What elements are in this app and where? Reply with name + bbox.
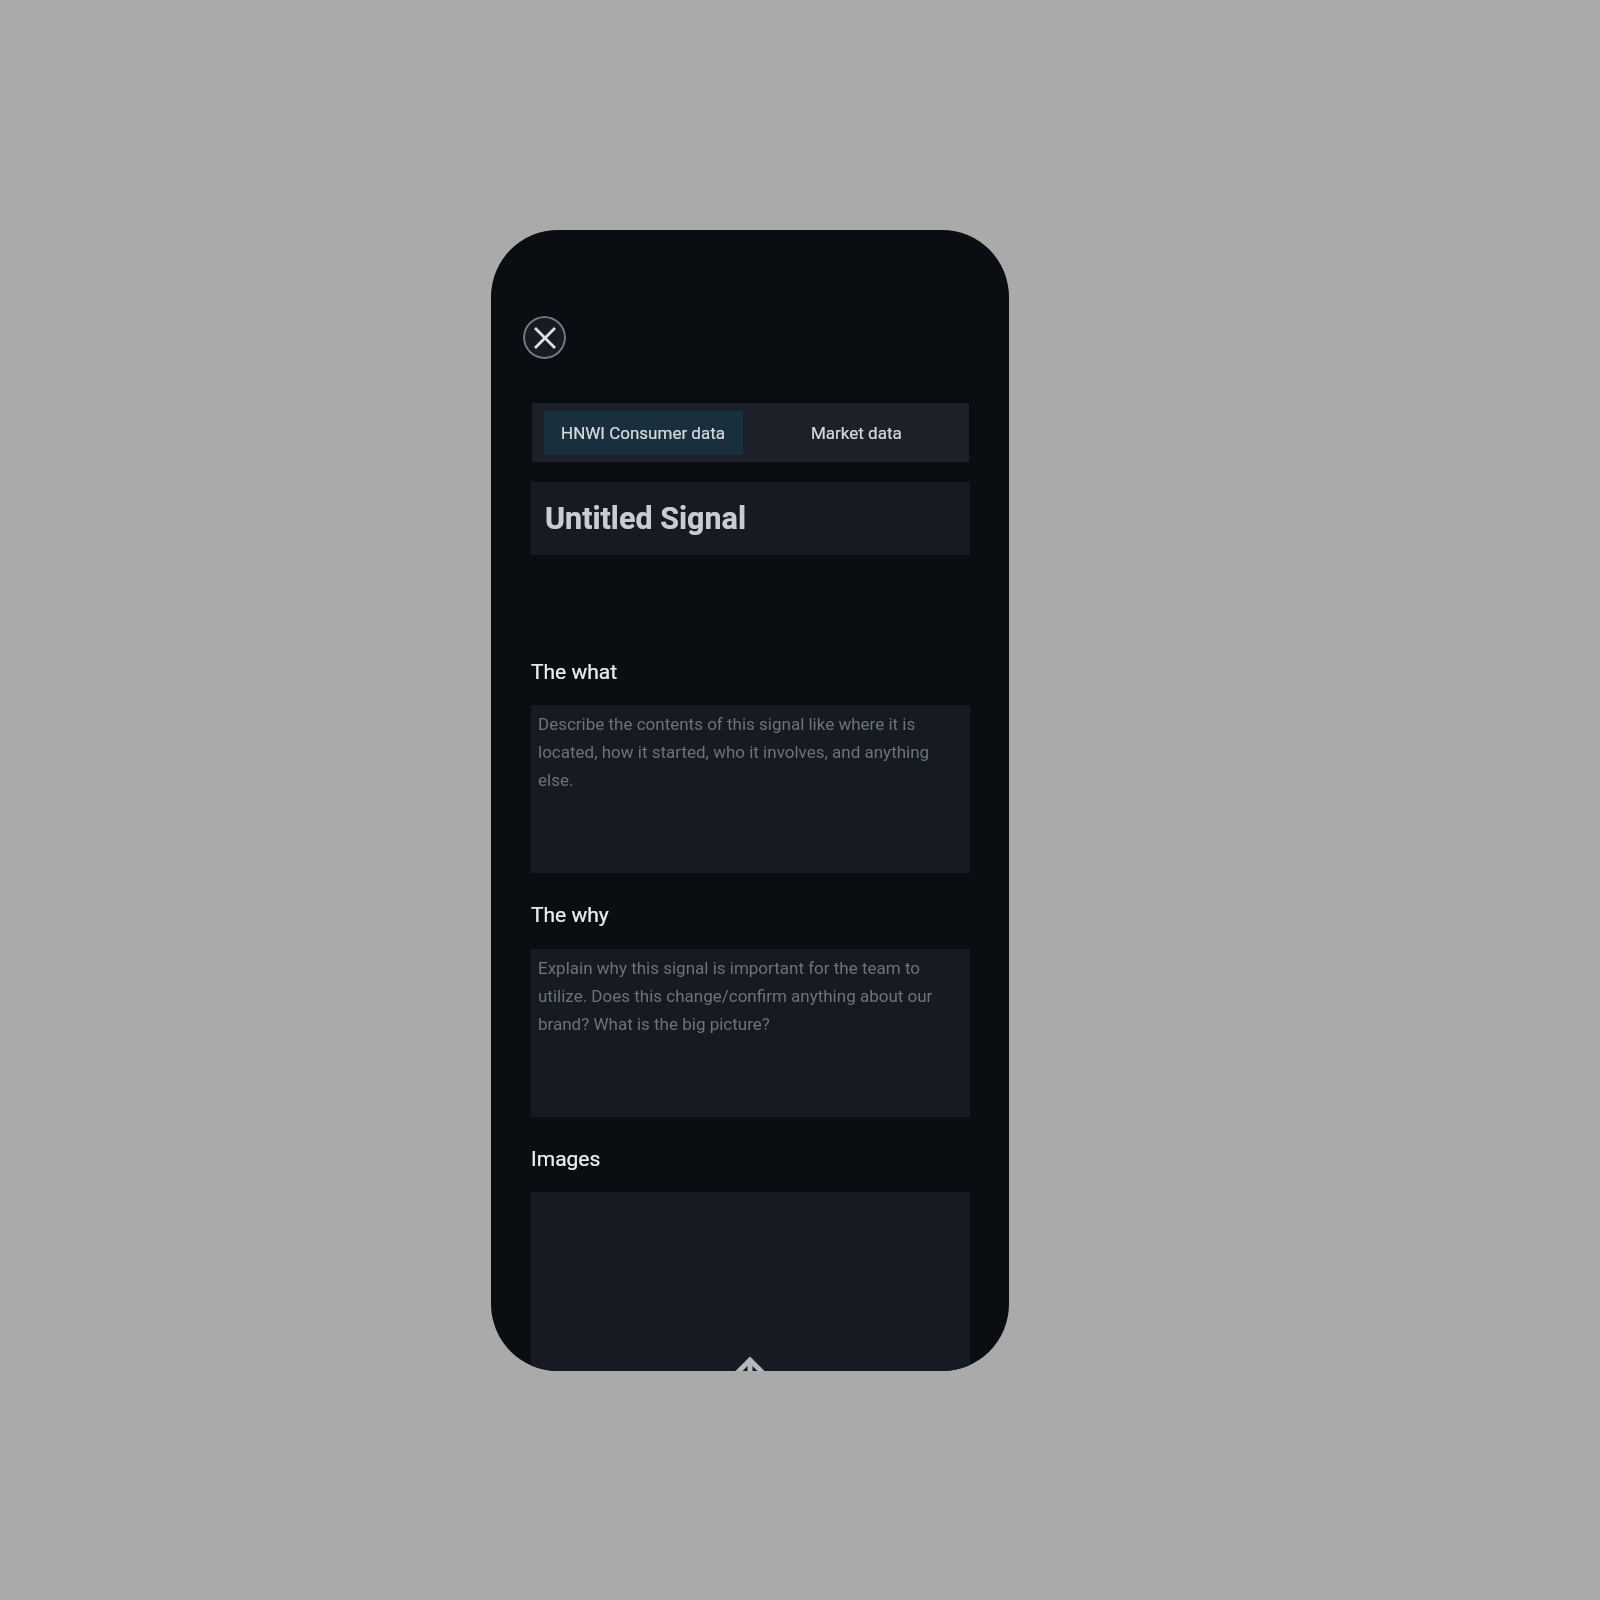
button[interactable]: HNWI Consumer data — [544, 411, 743, 455]
button[interactable] — [531, 1192, 970, 1371]
staticText: Describe the contents of this signal lik… — [538, 708, 962, 792]
button[interactable]: Close — [523, 316, 566, 359]
staticText: Untitled Signal — [545, 501, 747, 537]
staticText: The why — [531, 901, 609, 927]
staticText: Explain why this signal is important for… — [538, 952, 962, 1036]
staticText: The what — [531, 658, 618, 684]
button[interactable]: Upload — [727, 1325, 773, 1371]
button[interactable]: Describe the contents of this signal lik… — [531, 705, 970, 873]
button[interactable]: Market data — [743, 411, 969, 455]
staticText: HNWI Consumer data — [561, 423, 726, 443]
staticText: Market data — [811, 423, 902, 443]
button[interactable]: Untitled Signal — [531, 482, 970, 555]
button[interactable]: Explain why this signal is important for… — [531, 949, 970, 1117]
staticText: Images — [531, 1145, 601, 1171]
